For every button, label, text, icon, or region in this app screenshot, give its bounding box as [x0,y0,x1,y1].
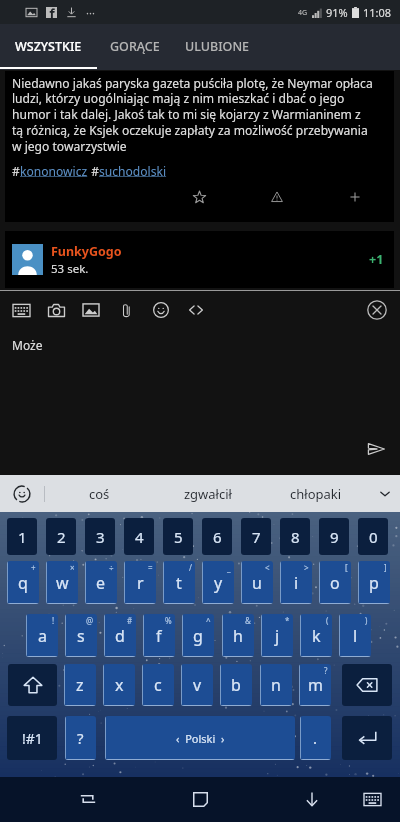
staticText: !#1 [22,729,43,748]
button[interactable]: coś [45,475,154,512]
button[interactable]: i [280,561,312,604]
button[interactable]: r [124,561,156,604]
staticText: h [233,625,243,647]
button[interactable]: 2 [46,518,76,555]
staticText: m [308,674,323,696]
button[interactable]: 8 [280,518,310,555]
button[interactable]: c [142,664,174,706]
button[interactable]: Close [366,299,388,321]
button[interactable]: ‹ Polski › [105,716,295,760]
button[interactable]: Code [185,299,207,321]
button[interactable]: d [104,614,136,657]
button[interactable]: WSZYSTKIE [0,23,97,69]
button[interactable]: m [299,664,331,706]
staticText: # [12,163,20,179]
button[interactable]: FunkyGogo [5,231,394,288]
button[interactable]: l [339,614,371,657]
button[interactable]: n [260,664,292,706]
staticText: b [231,674,241,696]
button[interactable]: t [163,561,195,604]
button[interactable]: 9 [319,518,349,555]
button[interactable]: Switch keyboard [348,783,396,815]
button[interactable]: a [26,614,58,657]
button[interactable]: y [202,561,234,604]
button[interactable]: o [319,561,351,604]
button[interactable]: Favourite [160,184,238,210]
staticText: 6 [213,527,222,547]
button[interactable]: Recents [60,783,116,815]
staticText: l [353,625,358,647]
button[interactable]: g [182,614,214,657]
button[interactable]: 6 [202,518,232,555]
button[interactable]: b [220,664,252,706]
button[interactable]: Hide keyboard [284,783,340,815]
button[interactable]: q [7,561,39,604]
button[interactable]: p [358,561,390,604]
staticText: ? [77,728,84,748]
button[interactable]: Backspace [342,664,392,706]
button[interactable]: GORĄCE [97,23,173,69]
staticText: x [115,674,124,696]
staticText: 11:08 [363,5,392,20]
staticText: f [156,625,162,647]
button[interactable]: j [261,614,293,657]
staticText: 1 [18,527,27,547]
staticText: c [154,674,162,696]
button[interactable]: chłopaki [262,475,370,512]
staticText: # [127,615,133,626]
button[interactable]: v [181,664,213,706]
staticText: < [265,562,270,573]
button[interactable]: 0 [358,518,388,555]
button[interactable]: Keyboard [10,299,32,321]
button[interactable]: Report [238,184,316,210]
button[interactable]: f [143,614,175,657]
button[interactable]: 4 [124,518,154,555]
staticText: + [31,562,36,573]
staticText: o [330,572,340,594]
staticText: n [271,674,281,696]
staticText: FunkyGogo [51,243,122,260]
staticText: 7 [252,527,261,547]
staticText: Może [12,337,43,353]
staticText: > [304,562,309,573]
button[interactable]: 1 [7,518,37,555]
button[interactable]: w [46,561,78,604]
button[interactable]: 5 [163,518,193,555]
button[interactable]: 7 [241,518,271,555]
button[interactable]: Emoji suggestions [0,475,44,512]
button[interactable]: s [65,614,97,657]
button[interactable]: Enter [342,716,392,760]
button[interactable]: Send [363,436,389,462]
button[interactable]: e [85,561,117,604]
button[interactable]: x [103,664,135,706]
button[interactable]: ? [65,716,96,760]
button[interactable]: zgwałcił [154,475,262,512]
button[interactable]: . [300,716,331,760]
staticText: 4 [135,527,144,547]
button[interactable]: Expand [370,475,400,512]
staticText: ··· [86,5,95,20]
staticText: a [38,625,47,647]
button[interactable]: Niedawno jakaś paryska gazeta puściła pl… [5,71,394,222]
button[interactable]: ULUBIONE [173,23,262,69]
button[interactable]: Shift [8,664,57,706]
button[interactable]: !#1 [7,716,57,760]
staticText: 91% [326,5,348,20]
staticText: w [56,572,69,594]
button[interactable]: Emoji [150,299,172,321]
button[interactable]: k [300,614,332,657]
button[interactable]: More [316,184,394,210]
button[interactable]: Attach [115,299,137,321]
button[interactable]: Home [172,783,228,815]
staticText: 5 [174,527,183,547]
button[interactable]: Camera [45,299,67,321]
button[interactable]: u [241,561,273,604]
staticText: 53 sek. [51,261,89,277]
button[interactable]: h [222,614,254,657]
button[interactable]: 3 [85,518,115,555]
staticText: p [369,572,379,594]
button[interactable]: Gallery [80,299,102,321]
button[interactable]: z [64,664,96,706]
staticText: q [18,572,28,594]
staticText: s [77,625,85,647]
